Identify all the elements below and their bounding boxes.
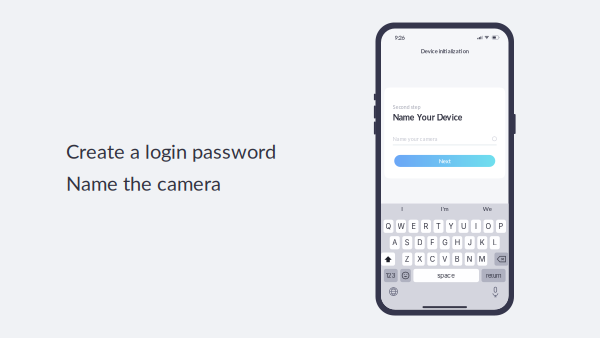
button[interactable]: space bbox=[413, 269, 479, 282]
staticText: I'm bbox=[441, 205, 449, 212]
staticText: 123 bbox=[386, 272, 396, 279]
staticText: A bbox=[392, 238, 397, 247]
button[interactable]: T bbox=[433, 220, 443, 233]
staticText: space bbox=[437, 272, 455, 279]
staticText: C bbox=[430, 255, 435, 264]
button[interactable]: Z bbox=[402, 252, 412, 266]
button[interactable]: A bbox=[390, 236, 400, 249]
button[interactable]: O bbox=[483, 220, 493, 233]
staticText: Second step bbox=[393, 104, 421, 110]
button[interactable]: U bbox=[458, 220, 468, 233]
staticText: R bbox=[423, 222, 428, 231]
button[interactable]: E bbox=[408, 220, 418, 233]
button[interactable]: W bbox=[396, 220, 406, 233]
staticText: We bbox=[483, 205, 492, 212]
button[interactable]: N bbox=[465, 252, 475, 266]
staticText: P bbox=[498, 222, 503, 231]
staticText: Name Your Device bbox=[393, 112, 463, 122]
button[interactable]: Shift bbox=[381, 252, 395, 266]
staticText: V bbox=[442, 255, 447, 264]
staticText: E bbox=[411, 222, 415, 231]
button[interactable]: Y bbox=[446, 220, 456, 233]
button[interactable]: We bbox=[466, 202, 508, 216]
staticText: Name the camera bbox=[66, 171, 221, 195]
staticText: H bbox=[455, 238, 460, 247]
button[interactable]: I bbox=[381, 202, 423, 216]
staticText: Z bbox=[405, 255, 410, 264]
button[interactable]: 123 bbox=[384, 269, 398, 282]
staticText: K bbox=[480, 238, 485, 247]
staticText: X bbox=[417, 255, 422, 264]
button[interactable]: V bbox=[440, 252, 450, 266]
staticText: O bbox=[485, 222, 491, 231]
staticText: Y bbox=[448, 222, 453, 231]
staticText: T bbox=[436, 222, 441, 231]
staticText: D bbox=[417, 238, 422, 247]
staticText: Device initialization bbox=[421, 48, 469, 54]
button[interactable]: G bbox=[440, 236, 450, 249]
button[interactable]: R bbox=[421, 220, 431, 233]
button[interactable]: K bbox=[477, 236, 487, 249]
button[interactable]: H bbox=[452, 236, 462, 249]
staticText: Name your camera bbox=[393, 136, 438, 142]
button[interactable]: Next bbox=[394, 155, 495, 167]
staticText: L bbox=[493, 238, 497, 247]
staticText: return bbox=[486, 272, 501, 279]
button[interactable]: Emoji keyboard bbox=[400, 269, 411, 282]
staticText: N bbox=[467, 255, 473, 264]
button[interactable]: B bbox=[452, 252, 462, 266]
button[interactable]: J bbox=[465, 236, 475, 249]
button[interactable]: Delete bbox=[494, 252, 508, 266]
staticText: U bbox=[461, 222, 466, 231]
button[interactable]: I bbox=[471, 220, 481, 233]
button[interactable]: X bbox=[415, 252, 425, 266]
button[interactable]: L bbox=[490, 236, 500, 249]
button[interactable]: P bbox=[496, 220, 506, 233]
staticText: G bbox=[442, 238, 447, 247]
staticText: I bbox=[401, 205, 403, 212]
staticText: S bbox=[405, 238, 410, 247]
button[interactable]: Switch keyboard bbox=[389, 288, 397, 296]
staticText: Next bbox=[439, 157, 451, 164]
button[interactable]: Q bbox=[383, 220, 393, 233]
button[interactable]: Dictate bbox=[492, 286, 499, 297]
button[interactable]: F bbox=[427, 236, 437, 249]
staticText: F bbox=[430, 238, 434, 247]
button[interactable]: I'm bbox=[423, 202, 466, 216]
staticText: I bbox=[475, 222, 477, 231]
staticText: 9:26 bbox=[394, 34, 404, 41]
staticText: W bbox=[397, 222, 404, 231]
button[interactable]: M bbox=[477, 252, 487, 266]
staticText: B bbox=[455, 255, 460, 264]
staticText: J bbox=[468, 238, 472, 247]
staticText: Q bbox=[385, 222, 391, 231]
staticText: Create a login password bbox=[66, 139, 276, 163]
button[interactable]: C bbox=[427, 252, 437, 266]
staticText: M bbox=[479, 255, 486, 264]
button[interactable]: S bbox=[402, 236, 412, 249]
button[interactable]: return bbox=[481, 269, 506, 282]
button[interactable]: D bbox=[415, 236, 425, 249]
